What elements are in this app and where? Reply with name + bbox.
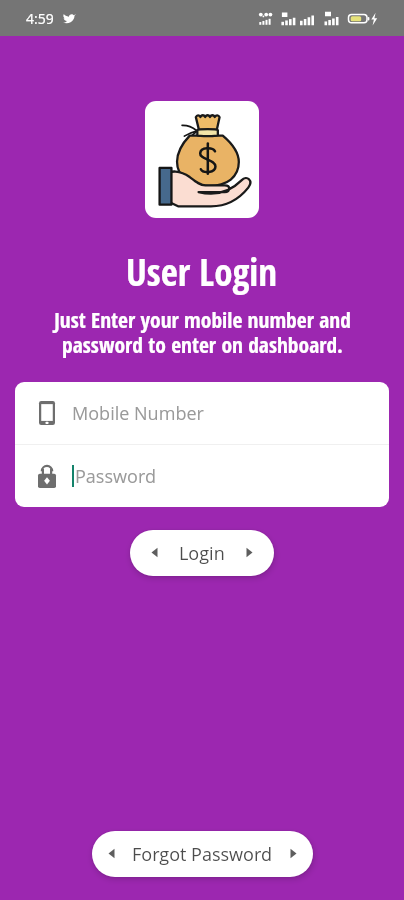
staticText: Password [75,464,156,489]
staticText: Login [179,541,225,566]
staticText: Just Enter your mobile number and passwo… [54,305,351,359]
staticText: Mobile Number [72,401,204,426]
button[interactable]: Mobile Number [15,382,389,444]
button[interactable]: Password [15,445,389,507]
staticText: 4:59 [26,9,54,28]
button[interactable]: Forgot Password [92,831,313,877]
staticText: Forgot Password [132,842,273,867]
staticText: User Login [126,246,278,296]
button[interactable]: Login [130,530,274,576]
